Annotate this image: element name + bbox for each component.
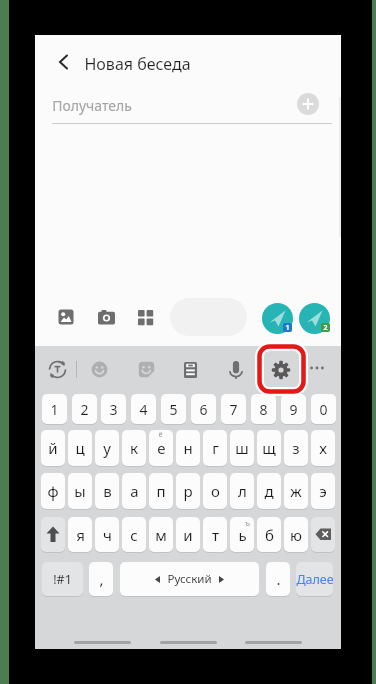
staticText: ъ bbox=[245, 518, 250, 528]
staticText: 5 bbox=[169, 400, 178, 419]
button[interactable] bbox=[134, 357, 159, 382]
button[interactable]: ф bbox=[41, 473, 65, 509]
button[interactable]: д bbox=[257, 473, 281, 509]
button[interactable] bbox=[41, 517, 65, 552]
button[interactable]: г bbox=[203, 430, 227, 466]
button[interactable]: 5 bbox=[161, 394, 186, 424]
staticText: 7 bbox=[229, 400, 238, 419]
button[interactable] bbox=[160, 641, 217, 644]
staticText: б bbox=[265, 525, 274, 545]
button[interactable]: п bbox=[149, 473, 173, 509]
button[interactable]: ш bbox=[230, 430, 254, 466]
staticText: я bbox=[76, 525, 85, 545]
staticText: Новая беседа bbox=[84, 53, 191, 75]
button[interactable]: ж bbox=[284, 473, 308, 509]
staticText: г bbox=[212, 438, 219, 458]
button[interactable]: Далее bbox=[296, 562, 333, 596]
button[interactable]: ч bbox=[95, 517, 119, 552]
button[interactable] bbox=[245, 641, 302, 644]
button[interactable] bbox=[87, 357, 112, 382]
button[interactable] bbox=[311, 517, 335, 552]
staticText: ф bbox=[47, 481, 59, 501]
button[interactable]: ц bbox=[68, 430, 92, 466]
button[interactable]: х bbox=[311, 430, 335, 466]
button[interactable]: с bbox=[122, 517, 146, 552]
button[interactable]: 6 bbox=[191, 394, 216, 424]
staticText: д bbox=[264, 481, 274, 501]
staticText: х bbox=[319, 438, 327, 458]
button[interactable]: 7 bbox=[221, 394, 246, 424]
staticText: 0 bbox=[319, 400, 328, 419]
button[interactable]: щ bbox=[257, 430, 281, 466]
button[interactable] bbox=[170, 298, 247, 336]
staticText: ё bbox=[158, 429, 163, 439]
button[interactable]: в bbox=[95, 473, 119, 509]
button[interactable]: о bbox=[203, 473, 227, 509]
button[interactable]: я bbox=[68, 517, 92, 552]
button[interactable]: й bbox=[41, 430, 65, 466]
staticText: й bbox=[48, 438, 58, 458]
staticText: 6 bbox=[199, 400, 208, 419]
button[interactable]: ю bbox=[284, 517, 308, 552]
button[interactable] bbox=[262, 303, 293, 334]
staticText: в bbox=[103, 481, 112, 501]
button[interactable]: 1 bbox=[42, 394, 67, 424]
button[interactable] bbox=[306, 357, 328, 379]
button[interactable]: !#1 bbox=[42, 562, 83, 596]
button[interactable] bbox=[223, 357, 248, 382]
staticText: ц bbox=[75, 438, 85, 458]
staticText: щ bbox=[262, 438, 276, 458]
button[interactable]: ы bbox=[68, 473, 92, 509]
button[interactable]: 4 bbox=[131, 394, 156, 424]
button[interactable]: а bbox=[122, 473, 146, 509]
staticText: 9 bbox=[289, 400, 298, 419]
button[interactable]: 0 bbox=[311, 394, 336, 424]
button[interactable] bbox=[58, 309, 74, 325]
button[interactable]: ь bbox=[230, 517, 254, 552]
button[interactable]: т bbox=[203, 517, 227, 552]
staticText: 1 bbox=[285, 323, 290, 332]
button[interactable] bbox=[268, 357, 294, 383]
button[interactable]: л bbox=[230, 473, 254, 509]
staticText: ю bbox=[290, 525, 302, 545]
button[interactable] bbox=[299, 303, 330, 334]
button[interactable]: б bbox=[257, 517, 281, 552]
staticText: к bbox=[130, 438, 138, 458]
staticText: , bbox=[99, 569, 104, 589]
button[interactable]: э bbox=[311, 473, 335, 509]
button[interactable]: и bbox=[176, 517, 200, 552]
button[interactable]: н bbox=[176, 430, 200, 466]
button[interactable] bbox=[45, 357, 70, 382]
button[interactable]: р bbox=[176, 473, 200, 509]
button[interactable]: к bbox=[122, 430, 146, 466]
staticText: Получатель bbox=[52, 96, 132, 115]
staticText: 8 bbox=[259, 400, 268, 419]
button[interactable]: у bbox=[95, 430, 119, 466]
staticText: а bbox=[130, 481, 139, 501]
button[interactable]: 8 bbox=[251, 394, 276, 424]
button[interactable]: м bbox=[149, 517, 173, 552]
button[interactable]: е bbox=[149, 430, 173, 466]
button[interactable] bbox=[98, 310, 115, 325]
staticText: 2 bbox=[80, 400, 89, 419]
button[interactable]: , bbox=[89, 562, 113, 596]
button[interactable]: 3 bbox=[101, 394, 126, 424]
staticText: у bbox=[103, 438, 111, 458]
button[interactable]: з bbox=[284, 430, 308, 466]
button[interactable] bbox=[138, 310, 154, 326]
button[interactable] bbox=[178, 357, 203, 382]
button[interactable] bbox=[49, 47, 79, 77]
button[interactable]: . bbox=[266, 562, 290, 596]
staticText: р bbox=[183, 481, 193, 501]
button[interactable] bbox=[297, 93, 319, 115]
staticText: ь bbox=[238, 525, 247, 545]
staticText: п bbox=[156, 481, 166, 501]
staticText: т bbox=[212, 525, 219, 545]
button[interactable]: Русский bbox=[120, 562, 259, 596]
staticText: Далее bbox=[296, 571, 333, 588]
button[interactable]: 9 bbox=[281, 394, 306, 424]
button[interactable]: 2 bbox=[72, 394, 97, 424]
staticText: ж bbox=[290, 481, 302, 501]
button[interactable] bbox=[74, 641, 131, 644]
staticText: 4 bbox=[139, 400, 148, 419]
